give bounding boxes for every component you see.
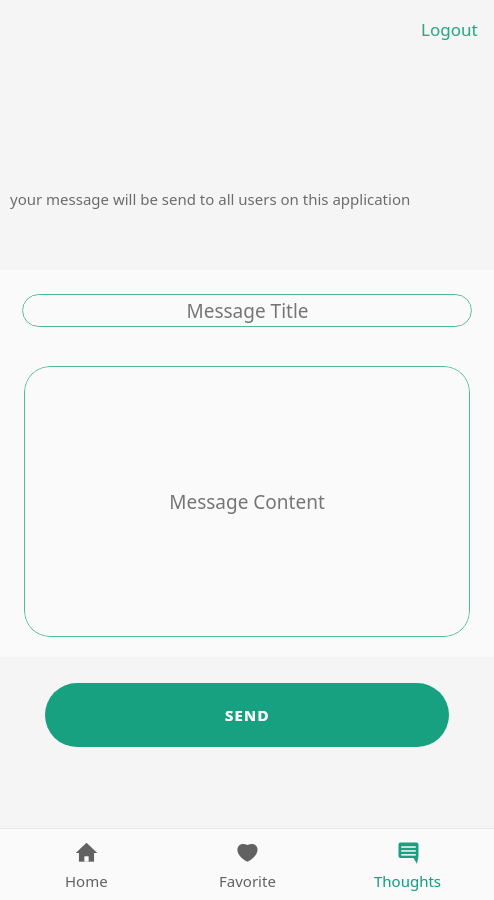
staticText: SEND xyxy=(225,705,270,725)
staticText: Home xyxy=(65,871,108,891)
staticText: Logout xyxy=(421,18,478,41)
staticText: Favorite xyxy=(219,871,276,891)
staticText: Message Title xyxy=(186,298,309,324)
staticText: Message Content xyxy=(169,489,325,515)
button[interactable]: Thoughts xyxy=(333,833,483,897)
button[interactable]: Favorite xyxy=(172,833,322,897)
button[interactable]: Message Content xyxy=(24,366,470,637)
button[interactable]: Message Title xyxy=(22,294,472,327)
button[interactable]: Logout xyxy=(411,14,488,45)
staticText: your message will be send to all users o… xyxy=(10,189,411,209)
button[interactable]: SEND xyxy=(45,683,449,747)
staticText: Thoughts xyxy=(374,871,442,891)
button[interactable]: Home xyxy=(11,833,161,897)
